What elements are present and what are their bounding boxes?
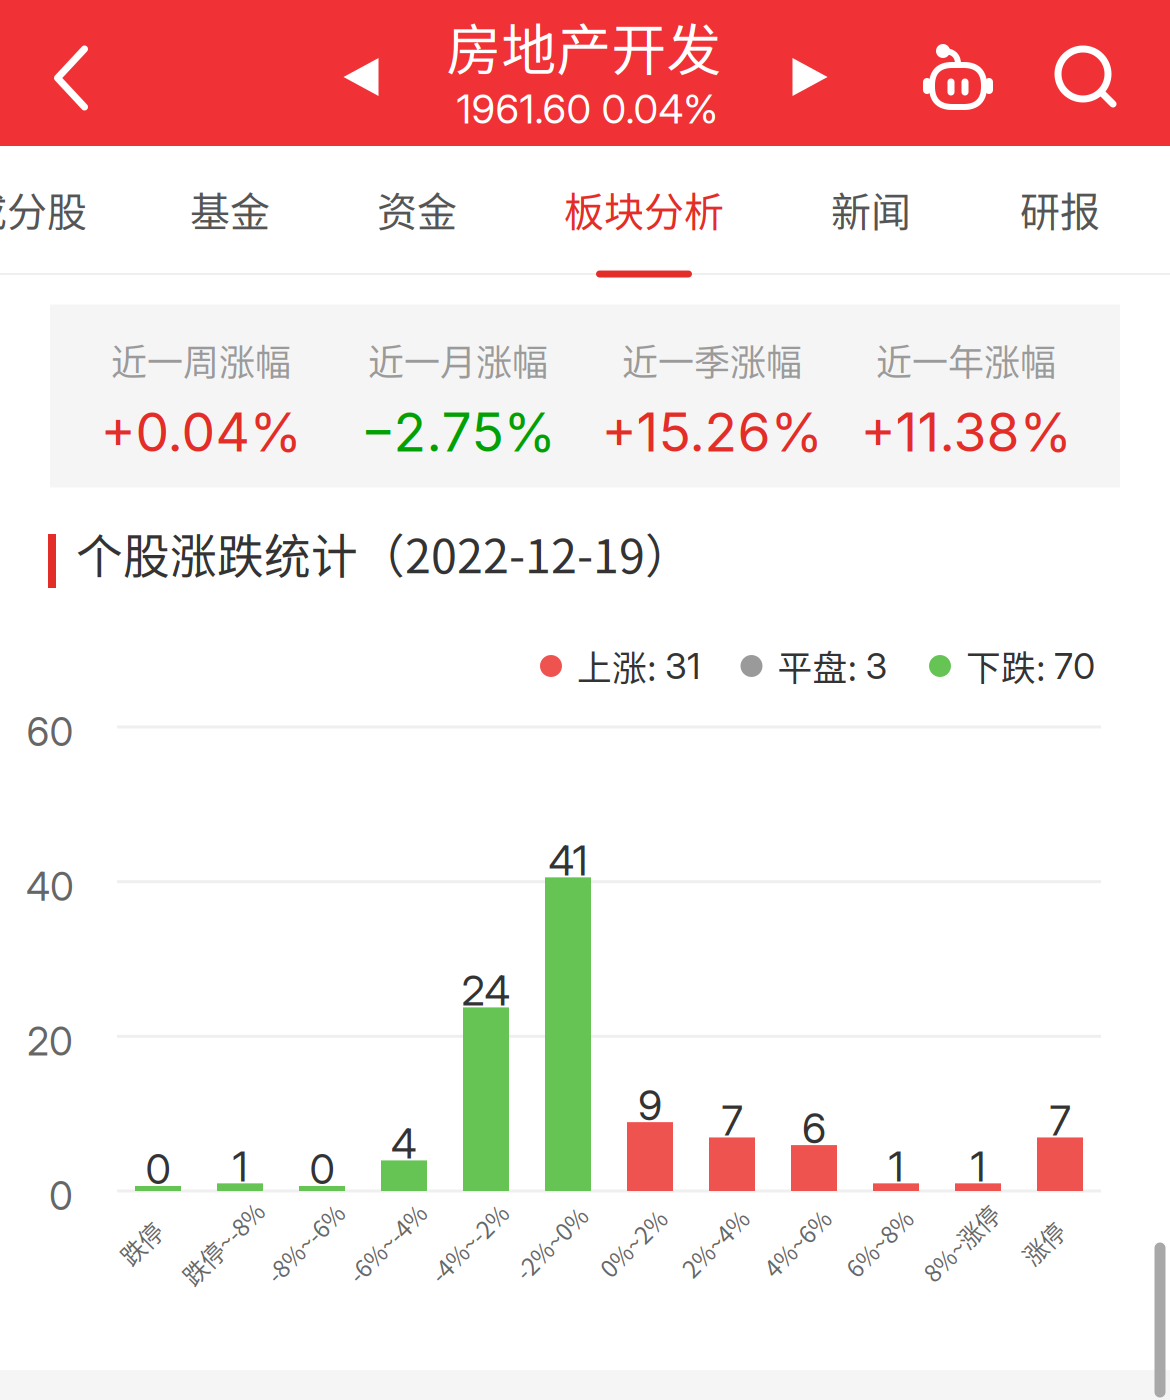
staticText: -4%~-2% <box>419 1226 518 1260</box>
staticText: 新闻 <box>831 180 911 238</box>
staticText: 个股涨跌统计（2022-12-19） <box>76 519 692 587</box>
button[interactable]: Back <box>13 5 129 151</box>
staticText: 24 <box>461 965 510 1015</box>
staticText: 跌停 <box>117 1226 165 1260</box>
staticText: 4%~6% <box>755 1226 838 1260</box>
staticText: 基金 <box>190 180 270 238</box>
button[interactable]: 研报 <box>969 145 1151 273</box>
staticText: 0 <box>49 1173 73 1219</box>
staticText: +15.26% <box>601 400 822 464</box>
staticText: 6%~8% <box>837 1226 920 1260</box>
staticText: 9 <box>638 1080 662 1130</box>
staticText: 资金 <box>377 180 457 238</box>
button[interactable]: AI assistant <box>903 4 1013 150</box>
staticText: 2%~4% <box>673 1226 756 1260</box>
staticText: +0.04% <box>100 400 301 464</box>
staticText: 40 <box>26 863 74 910</box>
button[interactable]: Previous sector <box>317 4 405 150</box>
staticText: 下跌: <box>966 641 1054 691</box>
staticText: 1 <box>970 1141 985 1191</box>
button[interactable]: 基金 <box>145 145 315 273</box>
staticText: 房地产开发 <box>446 6 721 86</box>
staticText: 7 <box>721 1095 742 1145</box>
staticText: 近一年涨幅 <box>876 334 1056 386</box>
staticText: 1961.60 0.04% <box>456 85 717 133</box>
staticText: 0 <box>145 1144 170 1194</box>
staticText: 成分股 <box>0 180 87 238</box>
staticText: 0%~2% <box>591 1226 674 1260</box>
staticText: 1 <box>232 1141 247 1191</box>
button[interactable]: 成分股 <box>0 145 117 273</box>
staticText: 跌停~-8% <box>171 1226 275 1260</box>
staticText: +11.38% <box>860 400 1071 464</box>
staticText: 近一周涨幅 <box>111 334 291 386</box>
staticText: 31 <box>665 644 700 688</box>
staticText: 近一月涨幅 <box>368 334 548 386</box>
staticText: 上涨: <box>577 641 665 691</box>
staticText: 涨停 <box>1019 1226 1067 1260</box>
staticText: 41 <box>548 835 587 885</box>
staticText: 20 <box>27 1018 73 1065</box>
staticText: 4 <box>391 1118 417 1168</box>
staticText: 近一季涨幅 <box>622 334 802 386</box>
staticText: 板块分析 <box>564 180 724 238</box>
button[interactable]: Search <box>1030 3 1140 149</box>
staticText: 研报 <box>1020 180 1100 238</box>
button[interactable]: 板块分析 <box>539 145 749 273</box>
staticText: 6 <box>802 1103 826 1153</box>
button[interactable]: 资金 <box>332 145 502 273</box>
staticText: -6%~-4% <box>337 1226 436 1260</box>
button[interactable]: Next sector <box>766 4 854 150</box>
staticText: 0 <box>309 1144 334 1194</box>
staticText: 8%~涨停 <box>913 1226 1009 1260</box>
staticText: 1 <box>888 1141 903 1191</box>
staticText: 7 <box>1049 1095 1070 1145</box>
staticText: -2%~0% <box>505 1226 596 1260</box>
staticText: 平盘: <box>777 641 865 691</box>
staticText: 3 <box>865 644 887 688</box>
staticText: −2.75% <box>360 400 555 464</box>
staticText: 60 <box>26 709 73 755</box>
staticText: 70 <box>1054 644 1095 688</box>
staticText: -8%~-6% <box>255 1226 354 1260</box>
button[interactable]: 新闻 <box>780 145 962 273</box>
